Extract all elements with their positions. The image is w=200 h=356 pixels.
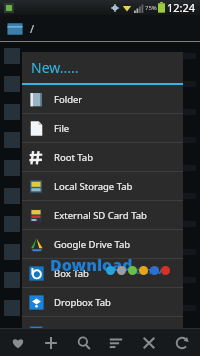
button[interactable]: Box Tab — [22, 259, 183, 287]
staticText: External SD Card Tab — [54, 209, 147, 222]
staticText: Download — [50, 254, 133, 276]
staticText: File — [54, 122, 70, 135]
button[interactable]: Root Tab — [22, 143, 183, 171]
staticText: / — [30, 21, 35, 36]
button[interactable]: Google Drive Tab — [22, 230, 183, 258]
button[interactable]: Refresh — [167, 329, 197, 356]
staticText: 75% — [145, 4, 157, 12]
staticText: New..... — [31, 58, 79, 77]
staticText: Google Drive Tab — [54, 238, 131, 251]
button[interactable]: Folder — [22, 85, 183, 113]
button[interactable]: Local Storage Tab — [22, 172, 183, 200]
button[interactable]: Close — [134, 329, 164, 356]
staticText: 12:24 — [167, 0, 196, 15]
button[interactable]: New — [36, 329, 66, 356]
button[interactable]: File — [22, 114, 183, 142]
button[interactable]: Sort — [101, 329, 131, 356]
button[interactable]: Dropbox Tab — [22, 288, 183, 316]
button[interactable]: Favorites — [3, 329, 33, 356]
staticText: .com.vn — [133, 264, 169, 276]
staticText: Network (SMB) Tab — [54, 326, 139, 339]
button[interactable]: External SD Card Tab — [22, 201, 183, 229]
staticText: Box Tab — [54, 267, 89, 280]
button[interactable]: Search — [69, 329, 99, 356]
button[interactable]: Network (SMB) Tab — [22, 317, 183, 347]
staticText: Dropbox Tab — [54, 296, 111, 309]
staticText: Local Storage Tab — [54, 180, 133, 193]
staticText: Root Tab — [54, 151, 93, 164]
staticText: Folder — [54, 93, 83, 106]
